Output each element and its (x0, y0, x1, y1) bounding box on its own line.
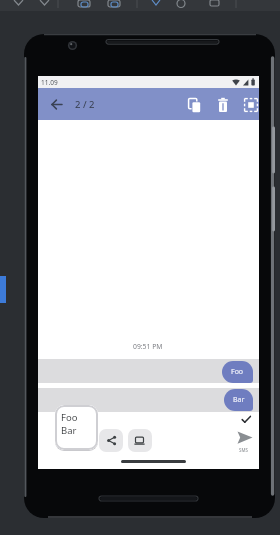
button[interactable]: Foo Bar (55, 405, 98, 450)
button[interactable] (46, 93, 68, 115)
staticText: Foo (231, 367, 244, 377)
button[interactable] (128, 429, 152, 452)
button[interactable]: Bar (224, 389, 253, 411)
staticText: SMS (239, 447, 248, 453)
staticText: Foo Bar (61, 411, 78, 437)
button[interactable]: Foo (222, 361, 253, 383)
button[interactable] (99, 429, 123, 452)
staticText: 2 / 2 (75, 98, 95, 111)
button[interactable] (212, 95, 234, 117)
button[interactable] (184, 95, 206, 117)
button[interactable] (240, 95, 262, 117)
staticText: 09:51 PM (133, 342, 163, 351)
staticText: Bar (233, 395, 245, 405)
staticText: 11.09 (41, 78, 58, 87)
button[interactable]: SMS (234, 428, 256, 454)
